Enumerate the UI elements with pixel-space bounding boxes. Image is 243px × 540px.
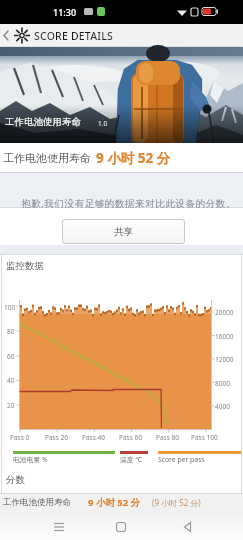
staticText: 40 <box>7 376 15 385</box>
staticText: 100 <box>4 303 16 312</box>
staticText: (9 小时 52 分) <box>152 497 201 508</box>
staticText: 20 <box>7 401 15 410</box>
staticText: 4000 <box>215 402 230 411</box>
staticText: 监控数据 <box>6 260 44 272</box>
staticText: 9 小时 52 分 <box>88 496 141 509</box>
staticText: 9 小时 52 分 <box>96 149 171 167</box>
staticText: Pass 60 <box>119 433 142 442</box>
staticText: Score per pass <box>158 455 205 464</box>
staticText: 电池电量 % <box>13 455 48 464</box>
staticText: 16000 <box>215 332 234 341</box>
staticText: 1.0 <box>98 119 108 128</box>
button[interactable] <box>176 519 200 535</box>
staticText: Pass 40 <box>82 433 105 442</box>
staticText: SCORE DETAILS <box>34 29 113 43</box>
staticText: Pass 100 <box>191 433 218 442</box>
button[interactable] <box>109 519 133 535</box>
staticText: 抱歉,我们没有足够的数据来对比此设备的分数。 <box>21 197 237 210</box>
staticText: 工作电池使用寿命 <box>3 497 71 508</box>
staticText: 60 <box>7 352 15 361</box>
staticText: Pass 80 <box>156 433 179 442</box>
staticText: Pass 0 <box>10 433 30 442</box>
button[interactable] <box>47 519 71 535</box>
staticText: Pass 20 <box>45 433 68 442</box>
staticText: 20000 <box>215 308 234 317</box>
staticText: 12000 <box>215 355 234 364</box>
staticText: 80 <box>7 327 15 336</box>
staticText: 分数 <box>6 474 25 486</box>
button[interactable]: 工作电池使用寿命 <box>0 493 243 512</box>
staticText: 共享 <box>114 226 133 238</box>
staticText: 温度 ℃ <box>120 455 143 464</box>
staticText: 11:30 <box>53 6 77 18</box>
button[interactable] <box>0 24 16 47</box>
button[interactable]: 共享 <box>62 219 185 244</box>
staticText: 工作电池使用寿命 <box>3 151 91 165</box>
staticText: 工作电池使用寿命 <box>5 116 81 128</box>
staticText: 8000 <box>215 379 230 388</box>
